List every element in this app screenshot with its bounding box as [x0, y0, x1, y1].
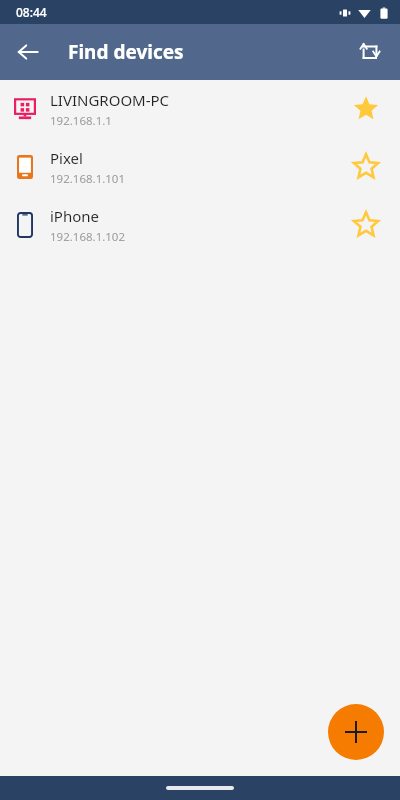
button[interactable]: LIVINGROOM-PC: [0, 80, 400, 138]
button[interactable]: Favorite: [338, 139, 394, 195]
staticText: 192.168.1.1: [50, 113, 112, 129]
staticText: 08:44: [16, 4, 47, 20]
staticText: LIVINGROOM-PC: [50, 90, 170, 110]
staticText: 192.168.1.101: [50, 171, 126, 187]
staticText: Find devices: [68, 39, 184, 65]
staticText: 192.168.1.102: [50, 229, 126, 245]
button[interactable]: iPhone: [0, 196, 400, 254]
button[interactable]: Pixel: [0, 138, 400, 196]
button[interactable]: Unfavorite: [338, 81, 394, 137]
button[interactable]: Refresh: [346, 28, 394, 76]
button[interactable]: Add device: [328, 704, 384, 760]
button[interactable]: Favorite: [338, 197, 394, 253]
staticText: iPhone: [50, 206, 100, 226]
button[interactable]: Back: [4, 28, 52, 76]
staticText: Pixel: [50, 148, 83, 168]
